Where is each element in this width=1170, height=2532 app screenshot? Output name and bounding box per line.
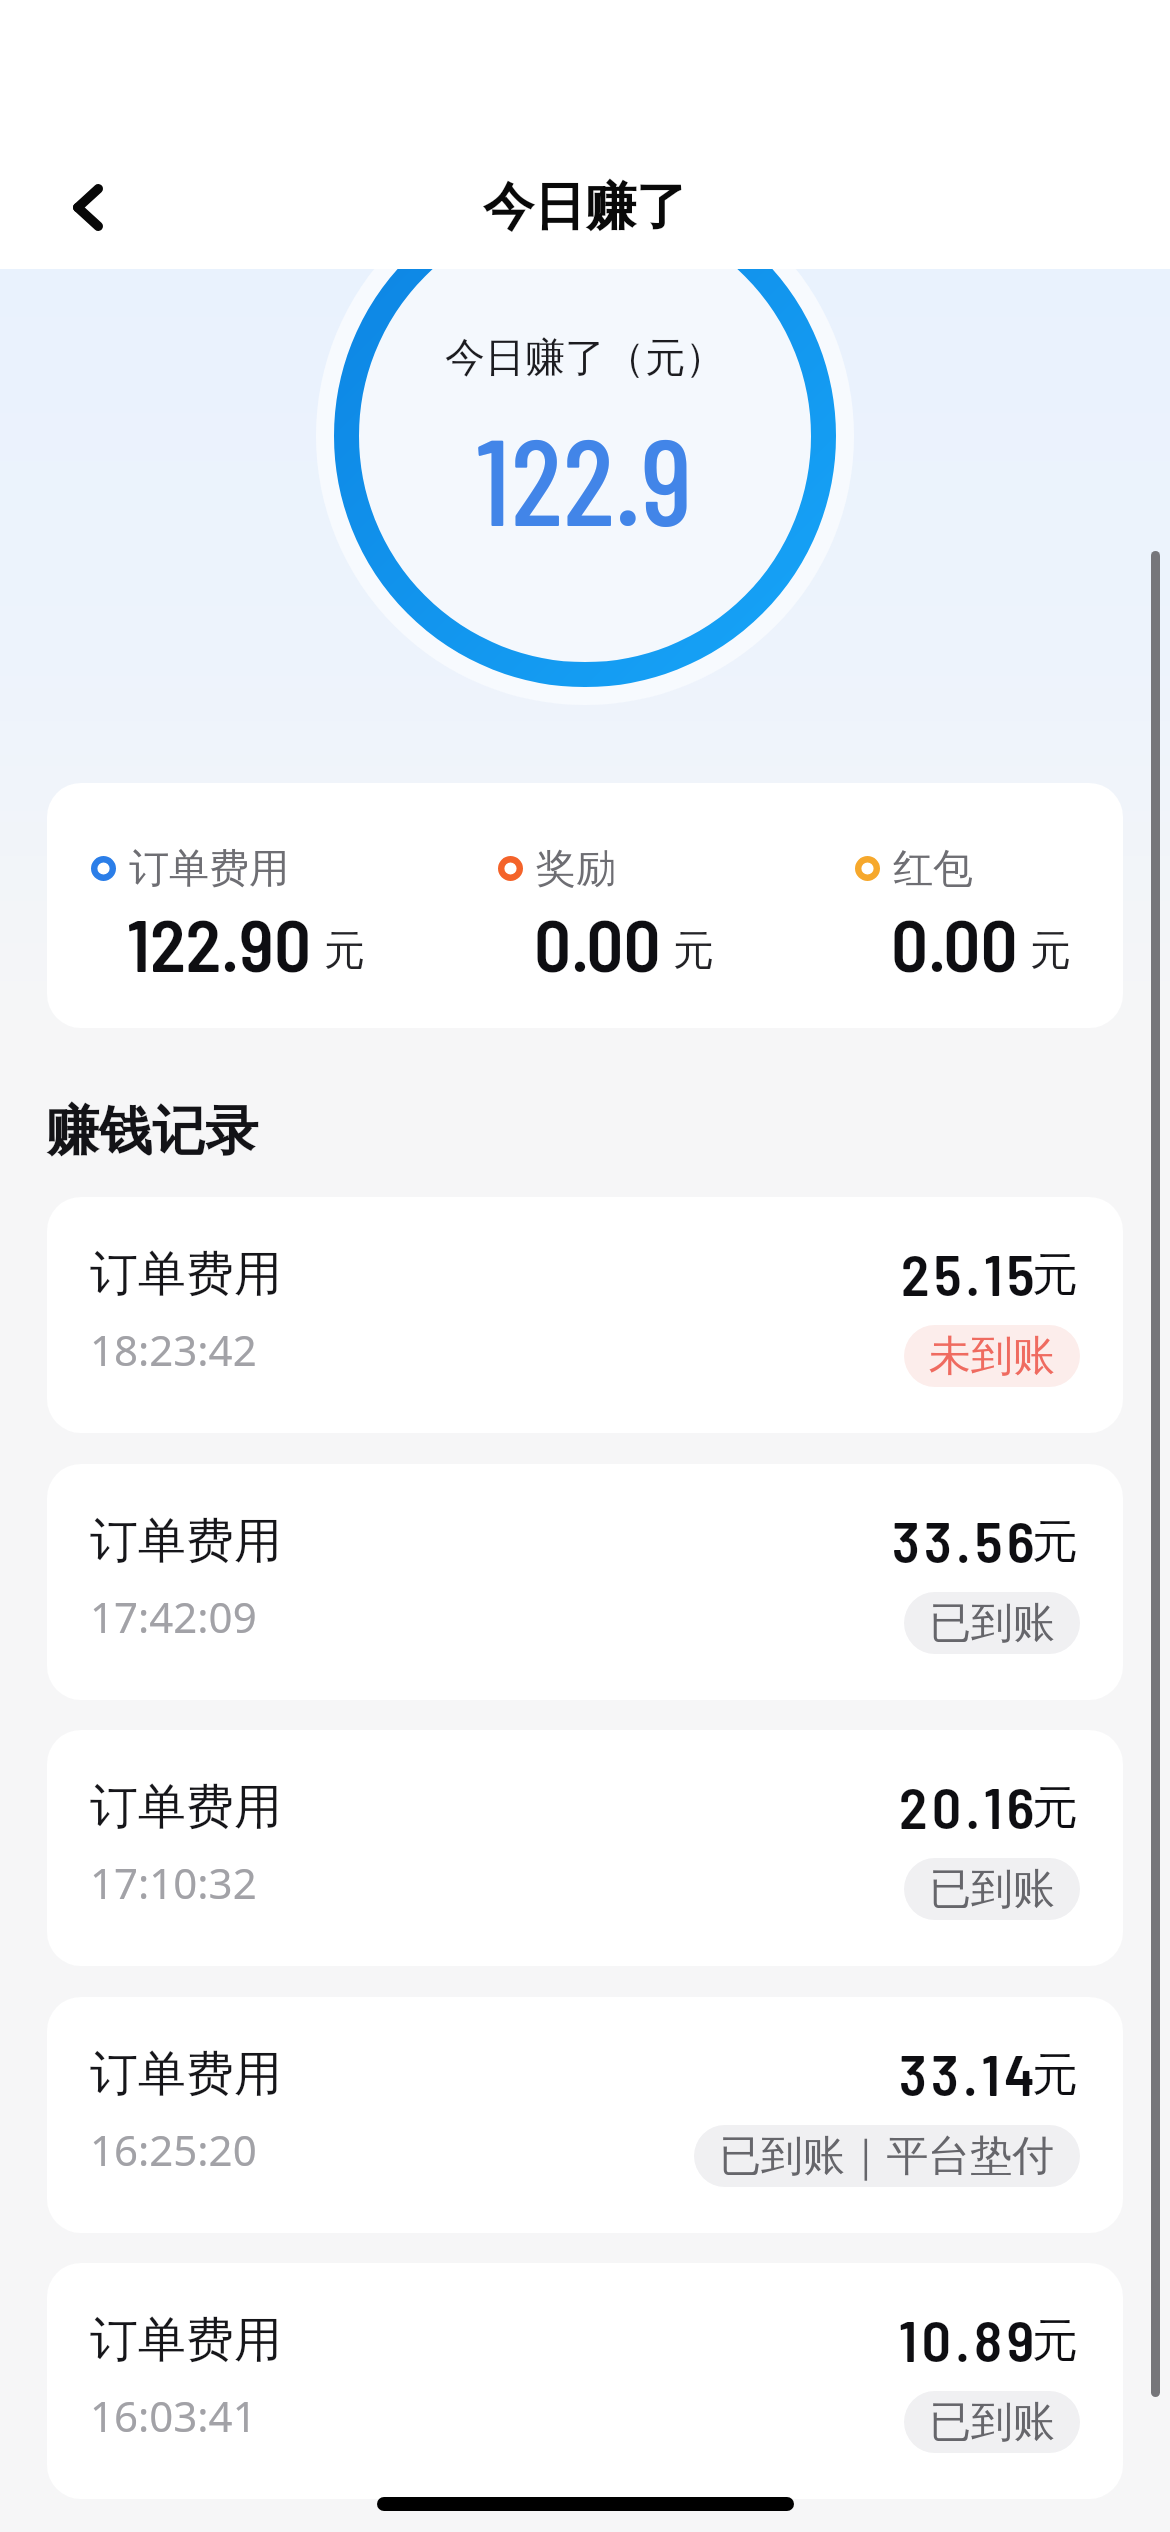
staticText: 20.16 [899,1771,1039,1841]
staticText: 已到账 [929,1597,1055,1650]
staticText: 122.9 [477,404,694,550]
staticText: 赚钱记录 [46,1098,258,1165]
staticText: 今日赚了（元） [445,332,725,382]
staticText: 订单费用 [90,2044,282,2104]
staticText: 元 [1032,1246,1078,1304]
staticText: 122.90 [127,899,312,987]
staticText: 订单费用 [90,1511,282,1571]
staticText: 16:03:41 [90,2387,257,2444]
button[interactable]: 订单费用 [47,1464,1123,1700]
staticText: 今日赚了 [483,175,687,239]
staticText: 元 [1030,925,1071,977]
button[interactable]: 订单费用 [47,2263,1123,2499]
staticText: 订单费用 [129,843,289,893]
button[interactable]: 订单费用 [47,1997,1123,2233]
staticText: 未到账 [929,1330,1055,1383]
staticText: 奖励 [536,843,616,893]
staticText: 元 [1032,2046,1078,2104]
staticText: 订单费用 [90,1244,282,1304]
staticText: 17:42:09 [90,1588,257,1645]
button[interactable]: 订单费用 [47,783,1123,1028]
staticText: 订单费用 [90,2310,282,2370]
staticText: 元 [324,925,365,977]
staticText: 订单费用 [90,1777,282,1837]
button[interactable]: Back [32,151,144,263]
staticText: 25.15 [901,1238,1039,1308]
staticText: 0.00 [534,899,661,987]
staticText: 已到账 [929,2396,1055,2449]
staticText: 红包 [893,843,973,893]
staticText: 已到账｜平台垫付 [719,2130,1055,2183]
staticText: 17:10:32 [90,1854,257,1911]
staticText: 元 [1032,1513,1078,1571]
staticText: 元 [1032,2312,1078,2370]
button[interactable]: 订单费用 [47,1730,1123,1966]
staticText: 33.56 [892,1505,1039,1575]
button[interactable]: 订单费用 [47,1197,1123,1433]
staticText: 10.89 [899,2304,1039,2374]
staticText: 0.00 [891,899,1018,987]
staticText: 18:23:42 [90,1321,257,1378]
staticText: 元 [673,925,714,977]
staticText: 33.14 [899,2038,1039,2108]
staticText: 元 [1032,1779,1078,1837]
staticText: 16:25:20 [90,2121,257,2178]
staticText: 已到账 [929,1863,1055,1916]
